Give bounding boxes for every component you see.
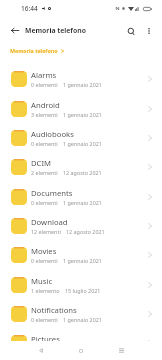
staticText: 1 gennaio 2021 bbox=[63, 111, 102, 118]
staticText: 12 agosto 2021 bbox=[63, 169, 102, 176]
button[interactable]: Android bbox=[0, 94, 162, 123]
staticText: 16:44 bbox=[21, 4, 38, 13]
staticText: 1 gennaio 2021 bbox=[63, 81, 102, 88]
staticText: Alarms bbox=[31, 70, 57, 80]
button[interactable]: Recent apps bbox=[101, 341, 141, 360]
staticText: 1 gennaio 2021 bbox=[63, 199, 102, 206]
button[interactable]: Music bbox=[0, 270, 162, 299]
button[interactable]: Search bbox=[122, 22, 140, 40]
staticText: 1 gennaio 2021 bbox=[63, 345, 102, 352]
button[interactable]: Movies bbox=[0, 240, 162, 270]
staticText: 0 elementi bbox=[31, 140, 58, 147]
staticText: 15 luglio 2021 bbox=[65, 287, 101, 294]
staticText: 1 gennaio 2021 bbox=[63, 316, 102, 323]
button[interactable]: Home bbox=[61, 341, 101, 360]
staticText: Pictures bbox=[31, 334, 60, 344]
staticText: Android bbox=[31, 100, 60, 110]
staticText: 1 elemento bbox=[31, 287, 60, 294]
staticText: 0 elementi bbox=[31, 199, 58, 206]
button[interactable]: More options bbox=[140, 22, 158, 40]
button[interactable]: Notifications bbox=[0, 299, 162, 328]
staticText: 12 elementi bbox=[31, 228, 61, 235]
staticText: 0 elementi bbox=[31, 257, 58, 264]
button[interactable]: Back bbox=[21, 341, 61, 360]
button[interactable]: Pictures bbox=[0, 328, 162, 358]
staticText: 12 agosto 2021 bbox=[66, 228, 105, 235]
staticText: 2 elementi bbox=[31, 169, 58, 176]
button[interactable]: Back bbox=[6, 21, 24, 39]
staticText: Download bbox=[31, 217, 68, 227]
staticText: Movies bbox=[31, 246, 57, 256]
button[interactable]: DCIM bbox=[0, 152, 162, 182]
staticText: 0 elementi bbox=[31, 345, 58, 352]
staticText: 1 gennaio 2021 bbox=[63, 257, 102, 264]
staticText: Audiobooks bbox=[31, 129, 74, 139]
staticText: Memoria telefono bbox=[25, 26, 86, 35]
staticText: 0 elementi bbox=[31, 316, 58, 323]
staticText: Memoria telefono bbox=[10, 47, 58, 54]
staticText: 3 elementi bbox=[31, 111, 58, 118]
button[interactable]: Alarms bbox=[0, 64, 162, 94]
staticText: Notifications bbox=[31, 305, 77, 315]
staticText: Documents bbox=[31, 188, 73, 198]
button[interactable]: Documents bbox=[0, 182, 162, 211]
staticText: Music bbox=[31, 276, 53, 286]
button[interactable]: Audiobooks bbox=[0, 123, 162, 152]
staticText: DCIM bbox=[31, 158, 52, 168]
button[interactable]: Download bbox=[0, 211, 162, 240]
staticText: 1 gennaio 2021 bbox=[63, 140, 102, 147]
button[interactable]: Memoria telefono bbox=[10, 47, 64, 54]
staticText: 0 elementi bbox=[31, 81, 58, 88]
